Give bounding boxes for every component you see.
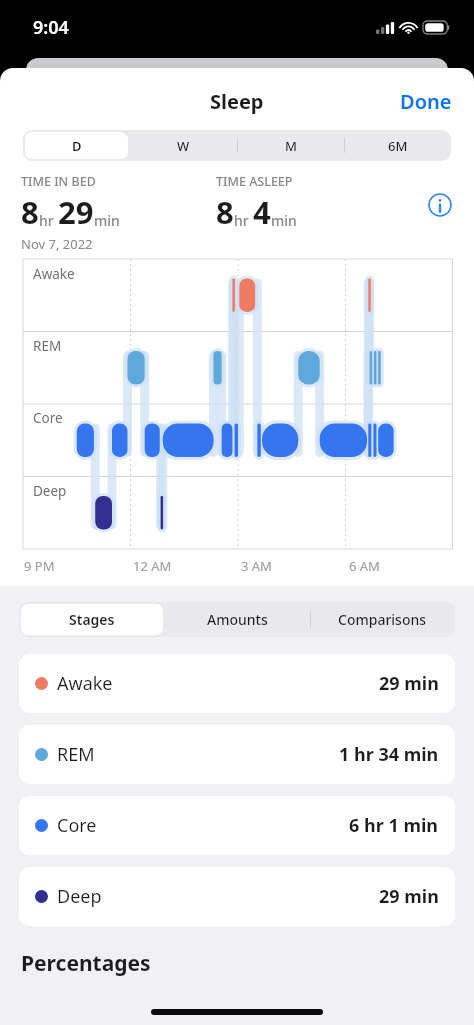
button[interactable]: Done <box>378 80 474 123</box>
staticText: min <box>271 211 297 230</box>
staticText: Percentages <box>21 949 151 978</box>
button[interactable]: Amounts <box>165 602 310 637</box>
staticText: 29 min <box>379 884 439 909</box>
staticText: 8 <box>21 191 39 233</box>
staticText: REM <box>57 742 95 767</box>
button[interactable]: Deep <box>19 867 455 926</box>
staticText: Deep <box>57 884 102 909</box>
staticText: 12 AM <box>133 557 172 575</box>
staticText: min <box>94 211 120 230</box>
staticText: Core <box>33 409 63 427</box>
staticText: 29 <box>58 191 94 233</box>
staticText: Stages <box>69 610 115 629</box>
staticText: Done <box>400 88 452 115</box>
staticText: 8 <box>216 191 234 233</box>
staticText: TIME IN BED <box>21 173 96 190</box>
button[interactable]: 6M <box>344 130 451 161</box>
staticText: Deep <box>33 482 67 500</box>
staticText: 9:04 <box>33 15 69 40</box>
staticText: W <box>177 137 190 155</box>
staticText: M <box>285 137 297 155</box>
button[interactable]: Stages <box>19 602 165 637</box>
button[interactable]: Awake <box>19 654 455 713</box>
button[interactable]: D <box>23 130 130 161</box>
button[interactable]: W <box>130 130 237 161</box>
staticText: hr <box>234 211 249 230</box>
staticText: hr <box>39 211 54 230</box>
staticText: 9 PM <box>24 557 55 575</box>
staticText: 6 hr 1 min <box>349 813 439 838</box>
button[interactable]: More information <box>422 187 458 223</box>
staticText: REM <box>33 337 62 355</box>
button[interactable]: Comparisons <box>310 602 455 637</box>
staticText: Core <box>57 813 97 838</box>
staticText: Amounts <box>207 610 268 629</box>
staticText: 3 AM <box>241 557 272 575</box>
staticText: D <box>72 137 82 155</box>
button[interactable]: M <box>237 130 344 161</box>
staticText: Awake <box>57 671 113 696</box>
staticText: 6 AM <box>349 557 380 575</box>
staticText: 1 hr 34 min <box>339 742 439 767</box>
staticText: 29 min <box>379 671 439 696</box>
staticText: Awake <box>33 265 75 283</box>
staticText: 6M <box>388 137 408 155</box>
button[interactable]: Core <box>19 796 455 855</box>
staticText: Nov 7, 2022 <box>21 235 93 251</box>
button[interactable]: REM <box>19 725 455 784</box>
staticText: 4 <box>253 191 271 233</box>
staticText: Comparisons <box>338 610 427 629</box>
staticText: Sleep <box>210 88 264 115</box>
staticText: TIME ASLEEP <box>216 173 293 190</box>
